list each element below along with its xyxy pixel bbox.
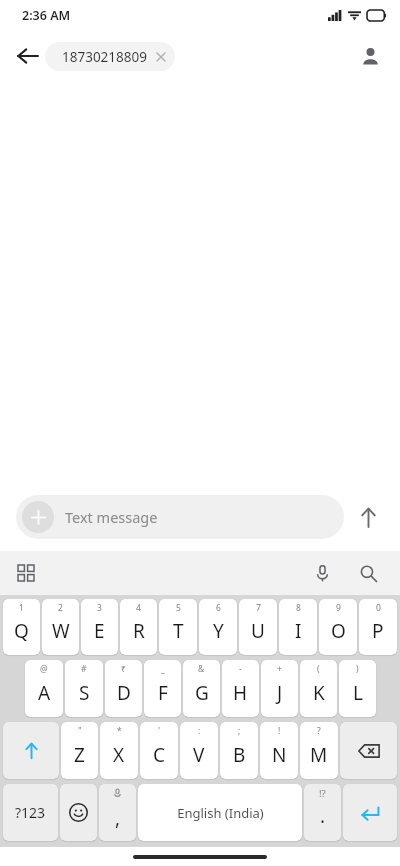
staticText: 6 [216,602,221,614]
staticText: B [233,742,246,768]
button[interactable]: Add attachment [22,501,54,533]
staticText: K [313,680,325,706]
staticText: !? [319,787,326,800]
button[interactable]: X [100,722,138,779]
staticText: @ [40,663,48,675]
staticText: 2:36 AM [22,7,71,24]
staticText: English (India) [177,804,264,822]
staticText: 0 [376,602,381,614]
staticText: ?123 [15,803,46,822]
staticText: U [251,618,265,644]
staticText: R [133,618,145,644]
button[interactable]: D [105,660,142,717]
staticText: ) [356,663,359,675]
staticText: ; [238,725,241,737]
staticText: . [320,803,326,829]
staticText: ( [317,663,320,675]
staticText: " [78,725,82,737]
staticText: S [79,680,90,706]
staticText: Y [213,618,224,644]
staticText: , [115,805,121,831]
button[interactable]: 18730218809 [45,42,175,71]
button[interactable]: O [319,599,357,655]
button[interactable]: F [144,660,181,717]
staticText: 2 [58,602,63,614]
button[interactable]: Z [61,722,98,779]
button[interactable]: Contact details [350,36,390,76]
staticText: 4 [136,602,141,614]
button[interactable]: B [220,722,258,779]
staticText: 3 [97,602,102,614]
button[interactable]: Shift [3,722,59,779]
staticText: C [153,742,166,768]
staticText: : [198,725,201,737]
staticText: H [233,680,248,706]
button[interactable]: E [81,599,118,655]
staticText: # [81,663,87,675]
button[interactable]: W [42,599,79,655]
button[interactable]: V [180,722,218,779]
staticText: ? [317,725,321,737]
staticText: Q [14,618,29,644]
button[interactable]: Comma [99,784,136,841]
staticText: J [277,680,283,706]
button[interactable]: C [140,722,178,779]
staticText: Text message [65,507,158,527]
button[interactable]: Voice input [304,555,340,591]
staticText: G [195,680,209,706]
staticText: I [295,618,302,644]
staticText: 8 [296,602,301,614]
staticText: W [52,618,70,644]
button[interactable]: Q [3,599,40,655]
staticText: ! [278,725,281,737]
staticText: * [117,725,122,737]
staticText: Z [74,742,85,768]
staticText: N [272,742,287,768]
button[interactable]: Back [8,36,48,76]
staticText: P [372,618,384,644]
staticText: D [117,680,131,706]
button[interactable]: K [300,660,337,717]
button[interactable]: T [159,599,197,655]
button[interactable]: M [300,722,338,779]
staticText: ₹ [121,663,126,675]
button[interactable]: Enter [343,784,397,841]
button[interactable]: U [239,599,277,655]
staticText: V [193,742,205,768]
button[interactable]: I [279,599,317,655]
button[interactable]: Backspace [340,722,397,779]
staticText: A [38,680,51,706]
staticText: E [94,618,105,644]
button[interactable]: J [261,660,298,717]
staticText: 7 [256,602,261,614]
staticText: - [239,663,242,675]
button[interactable]: L [339,660,376,717]
staticText: F [158,680,168,706]
button[interactable]: P [359,599,397,655]
staticText: X [113,742,125,768]
button[interactable]: Period [304,784,341,841]
button[interactable]: N [260,722,298,779]
button[interactable]: Space [138,784,302,841]
button[interactable]: S [65,660,103,717]
button[interactable]: Symbols [3,784,58,841]
button[interactable]: Add attachment [16,495,344,539]
button[interactable]: R [120,599,157,655]
button[interactable]: Keyboard menu [8,555,44,591]
staticText: 5 [176,602,181,614]
staticText: O [331,618,346,644]
button[interactable]: Search [350,555,386,591]
staticText: 9 [336,602,341,614]
staticText: 18730218809 [62,48,147,66]
button[interactable]: Emoji [60,784,97,841]
button[interactable]: G [183,660,220,717]
staticText: L [353,680,363,706]
staticText: T [173,618,184,644]
staticText: 1 [19,602,24,614]
button[interactable]: Y [199,599,237,655]
staticText: & [198,663,205,675]
staticText: + [277,663,282,675]
button[interactable]: Send [344,493,392,541]
button[interactable]: H [222,660,259,717]
button[interactable]: A [25,660,63,717]
